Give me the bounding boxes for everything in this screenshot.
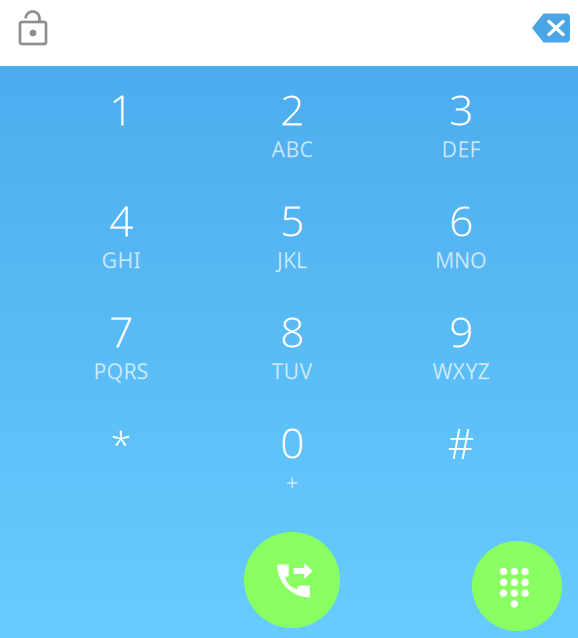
staticText: GHI — [101, 246, 140, 274]
staticText: * — [110, 419, 131, 469]
button[interactable]: 9 — [381, 312, 541, 420]
button[interactable]: Keypad — [472, 541, 562, 631]
staticText: JKL — [277, 246, 307, 274]
staticText: 7 — [109, 303, 133, 359]
button[interactable]: 1 — [41, 90, 201, 198]
button[interactable]: Delete — [532, 12, 570, 44]
button[interactable]: 4 — [41, 201, 201, 309]
staticText: MNO — [435, 246, 487, 274]
staticText: ABC — [271, 135, 312, 163]
staticText: 4 — [109, 192, 133, 248]
staticText: 2 — [280, 81, 304, 137]
staticText: 0 — [280, 414, 304, 470]
staticText: PQRS — [93, 357, 148, 385]
staticText: 6 — [449, 192, 473, 248]
staticText: # — [447, 416, 474, 470]
button[interactable]: Call — [244, 532, 340, 628]
button[interactable]: 6 — [381, 201, 541, 309]
staticText: DEF — [441, 135, 480, 163]
staticText: + — [286, 468, 298, 496]
staticText: WXYZ — [432, 357, 489, 385]
button[interactable]: 3 — [381, 90, 541, 198]
staticText: TUV — [271, 357, 312, 385]
button[interactable]: Unlock — [15, 8, 51, 52]
staticText: 1 — [109, 81, 133, 137]
button[interactable]: 8 — [212, 312, 372, 420]
button[interactable]: 0 — [212, 423, 372, 531]
button[interactable]: # — [381, 423, 541, 531]
staticText: 9 — [449, 303, 473, 359]
staticText: 5 — [280, 192, 304, 248]
button[interactable]: 7 — [41, 312, 201, 420]
button[interactable]: 2 — [212, 90, 372, 198]
button[interactable]: 5 — [212, 201, 372, 309]
button[interactable]: * — [41, 423, 201, 531]
staticText: 3 — [449, 81, 473, 137]
staticText: 8 — [280, 303, 304, 359]
